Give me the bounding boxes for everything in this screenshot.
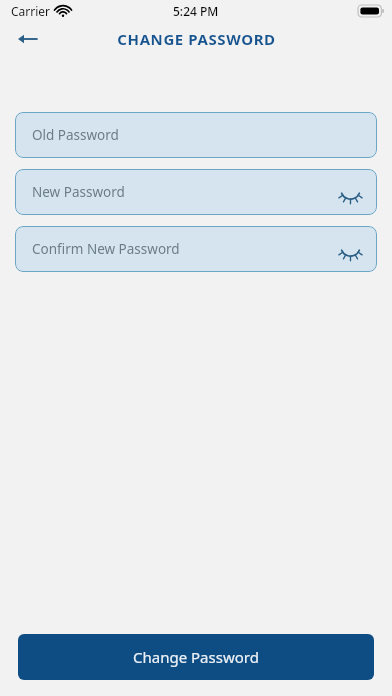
button[interactable]: New Password — [15, 169, 377, 215]
button[interactable]: Confirm New Password — [15, 226, 377, 272]
staticText: Carrier — [11, 3, 51, 19]
button[interactable]: Show password — [333, 232, 367, 266]
button[interactable]: Show password — [333, 175, 367, 209]
staticText: Confirm New Password — [32, 240, 180, 258]
button[interactable]: Change Password — [18, 634, 374, 680]
button[interactable]: Old Password — [15, 112, 377, 158]
button[interactable]: Back — [8, 22, 48, 56]
staticText: Change Password — [133, 647, 259, 667]
staticText: CHANGE PASSWORD — [117, 29, 276, 49]
staticText: New Password — [32, 183, 125, 201]
staticText: Old Password — [32, 126, 119, 144]
staticText: 5:24 PM — [173, 3, 219, 19]
